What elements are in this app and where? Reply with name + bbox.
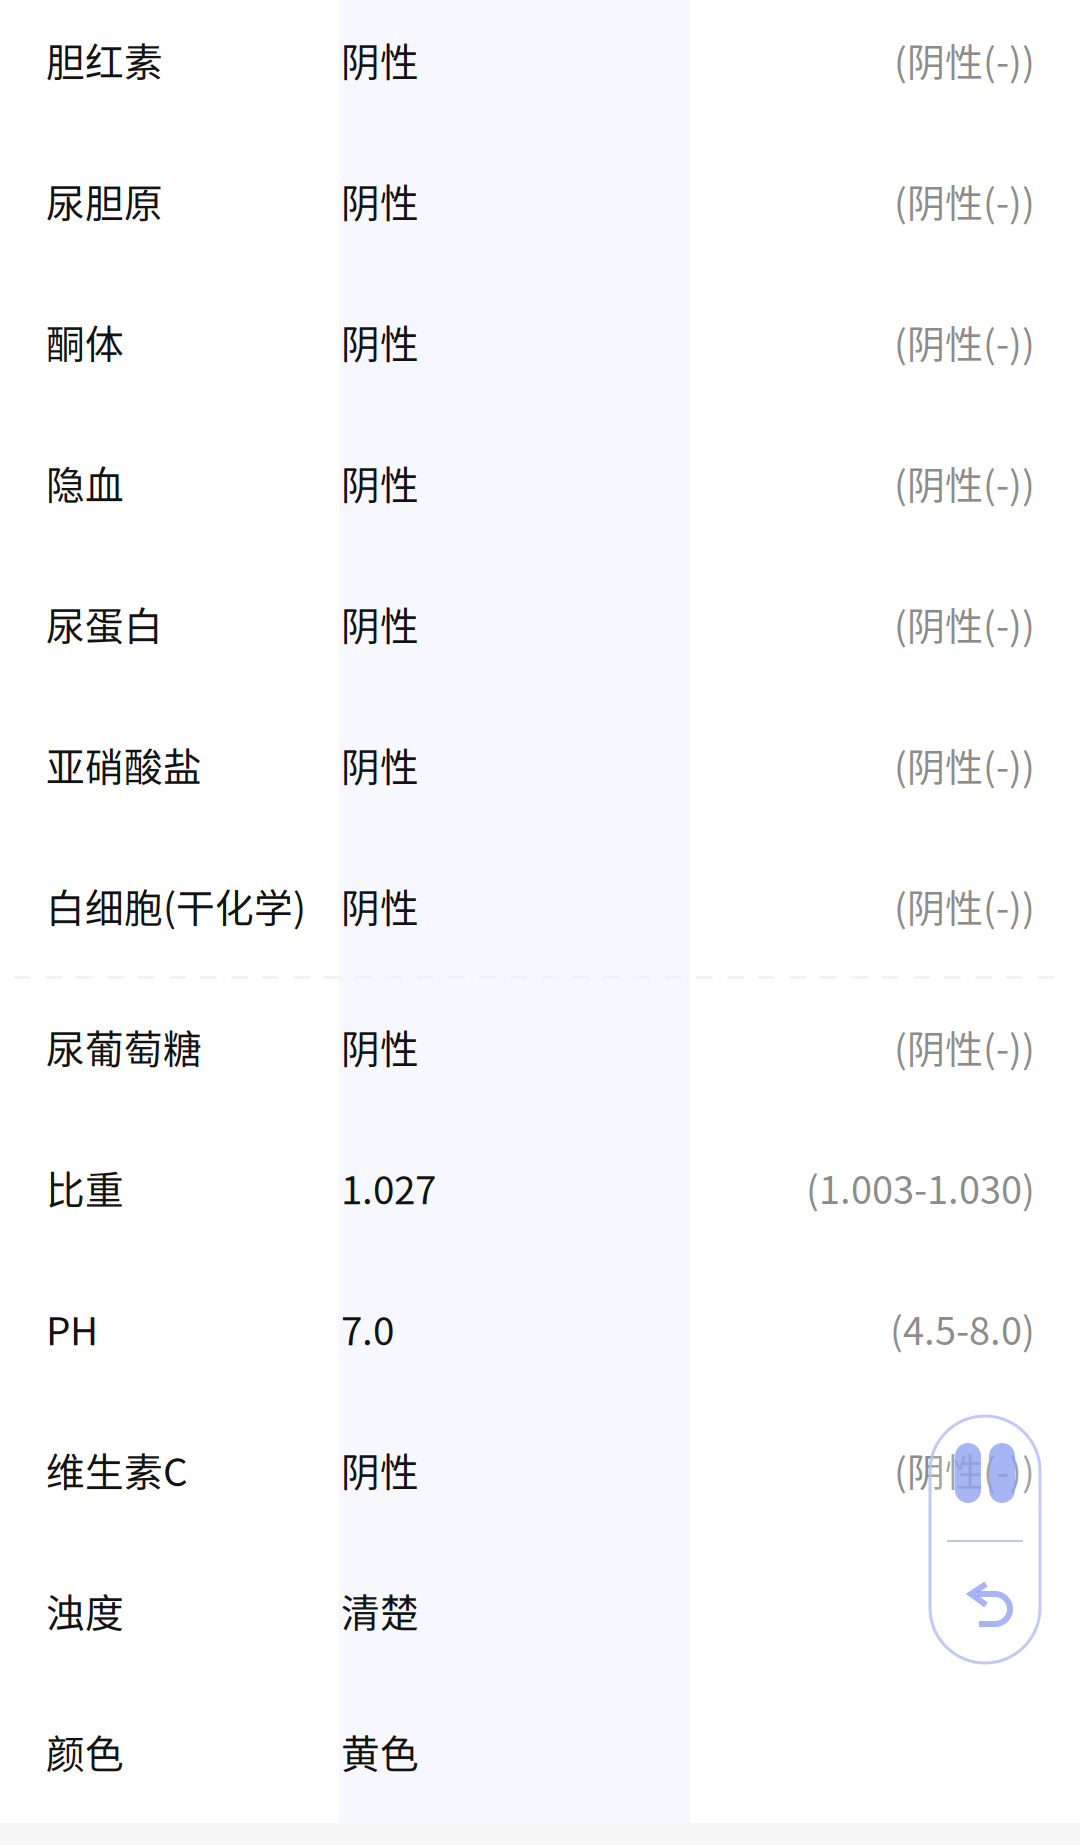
button[interactable]: 比重 [0,1117,1080,1258]
staticText: 1.027 [341,1159,436,1215]
staticText: (阴性(-)) [894,878,1035,933]
staticText: 隐血 [46,454,124,510]
staticText: (4.5-8.0) [890,1301,1035,1356]
button[interactable]: 浊度 [0,1540,1080,1681]
staticText: 尿胆原 [46,172,163,228]
staticText: 阴性 [341,454,419,510]
staticText: 阴性 [341,313,419,369]
staticText: 阴性 [341,172,419,228]
staticText: 尿葡萄糖 [46,1018,202,1074]
staticText: (阴性(-)) [894,32,1035,87]
staticText: 浊度 [46,1582,124,1638]
staticText: 阴性 [341,1018,419,1074]
staticText: (阴性(-)) [894,173,1035,228]
staticText: 阴性 [341,1441,419,1497]
staticText: 胆红素 [46,31,163,87]
staticText: (阴性(-)) [894,1442,1035,1497]
staticText: 比重 [46,1159,124,1215]
button[interactable]: 维生素C [0,1399,1080,1540]
staticText: 白细胞(干化学) [46,877,306,933]
staticText: (阴性(-)) [894,737,1035,792]
staticText: 阴性 [341,877,419,933]
staticText: 阴性 [341,595,419,651]
staticText: 7.0 [341,1300,394,1356]
button[interactable]: 酮体 [0,271,1080,412]
button[interactable]: 尿蛋白 [0,553,1080,694]
staticText: 颜色 [46,1723,124,1779]
staticText: 清楚 [341,1582,419,1638]
staticText: (1.003-1.030) [806,1160,1035,1215]
button[interactable]: PH [0,1258,1080,1399]
button[interactable]: 胆红素 [0,0,1080,130]
staticText: (阴性(-)) [894,1019,1035,1074]
staticText: 亚硝酸盐 [46,736,202,792]
button[interactable]: 亚硝酸盐 [0,694,1080,835]
staticText: 黄色 [341,1723,419,1779]
button[interactable]: Navigation gestures [930,1416,1040,1663]
staticText: (阴性(-)) [894,314,1035,369]
staticText: (阴性(-)) [894,596,1035,651]
button[interactable]: 隐血 [0,412,1080,553]
staticText: 阴性 [341,31,419,87]
button[interactable]: 尿葡萄糖 [0,976,1080,1117]
staticText: (阴性(-)) [894,455,1035,510]
staticText: 阴性 [341,736,419,792]
staticText: 尿蛋白 [46,595,163,651]
staticText: 维生素C [46,1441,188,1497]
staticText: PH [46,1300,98,1356]
staticText: 酮体 [46,313,124,369]
button[interactable]: 尿胆原 [0,130,1080,271]
button[interactable]: 颜色 [0,1681,1080,1822]
button[interactable]: 白细胞(干化学) [0,835,1080,976]
